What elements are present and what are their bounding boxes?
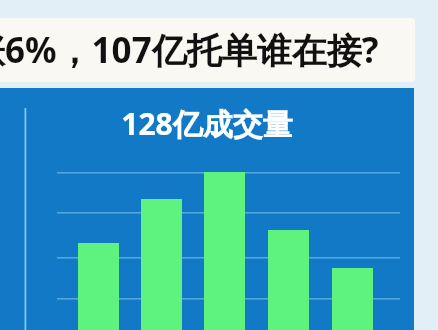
button[interactable]: 涨6%，107亿托单谁在接?	[0, 18, 415, 82]
button[interactable]: 128亿成交量	[0, 88, 414, 330]
staticText: 涨6%，107亿托单谁在接?	[0, 26, 385, 74]
staticText: 128亿成交量	[0, 103, 414, 144]
button[interactable]: 成交量柱状图	[20, 150, 400, 320]
